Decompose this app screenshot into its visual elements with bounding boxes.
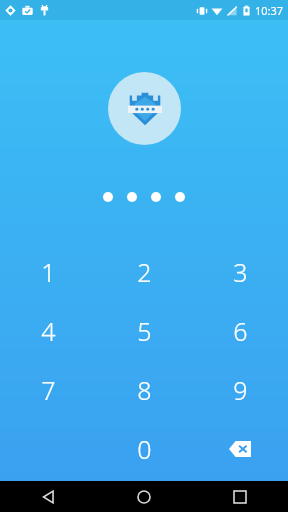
button[interactable]: 1 bbox=[0, 242, 96, 301]
staticText: 1 bbox=[41, 255, 56, 289]
staticText: 8 bbox=[137, 373, 152, 407]
button[interactable]: 3 bbox=[192, 242, 288, 301]
staticText: 0 bbox=[137, 432, 152, 466]
button[interactable]: 2 bbox=[96, 242, 192, 301]
button[interactable]: 8 bbox=[96, 360, 192, 419]
staticText: 6 bbox=[233, 314, 248, 348]
button[interactable]: 6 bbox=[192, 301, 288, 360]
staticText: 5 bbox=[137, 314, 152, 348]
staticText: 7 bbox=[41, 373, 56, 407]
staticText: 9 bbox=[233, 373, 248, 407]
button[interactable]: 0 bbox=[96, 419, 192, 478]
staticText: 2 bbox=[137, 255, 152, 289]
staticText: 10:37 bbox=[255, 3, 284, 18]
staticText: 3 bbox=[233, 255, 248, 289]
button[interactable]: 9 bbox=[192, 360, 288, 419]
button[interactable]: 7 bbox=[0, 360, 96, 419]
button[interactable]: Back bbox=[0, 481, 96, 512]
button[interactable]: 5 bbox=[96, 301, 192, 360]
button[interactable]: 4 bbox=[0, 301, 96, 360]
staticText: 4 bbox=[41, 314, 56, 348]
button[interactable]: Delete bbox=[192, 419, 288, 478]
button[interactable]: Home bbox=[96, 481, 192, 512]
button[interactable]: Recent apps bbox=[192, 481, 288, 512]
